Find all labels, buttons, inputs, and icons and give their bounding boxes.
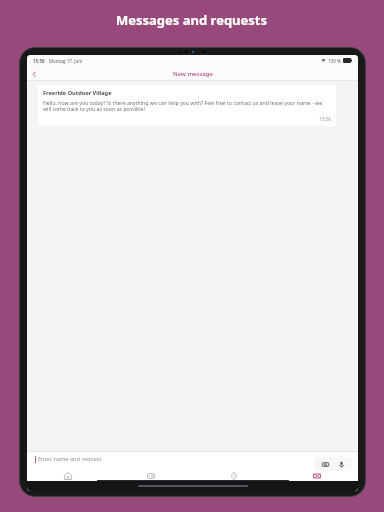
staticText: 15:56 xyxy=(33,58,45,64)
button[interactable]: Keyboard xyxy=(319,458,331,470)
button[interactable]: Home xyxy=(27,470,109,489)
staticText: Travel guide xyxy=(223,482,245,487)
staticText: Freeride Outdoor Village xyxy=(43,89,112,97)
staticText: 100 % xyxy=(328,58,341,64)
button[interactable]: Travel guide xyxy=(192,470,275,489)
button[interactable]: Send xyxy=(339,454,350,465)
button[interactable]: Enter name and request xyxy=(38,455,339,463)
staticText: Messages and requests xyxy=(116,11,268,29)
staticText: Hello, how are you today? Is there anyth… xyxy=(43,99,331,113)
button[interactable]: Microphone xyxy=(335,458,347,470)
staticText: Highlights xyxy=(141,482,160,487)
staticText: 15:56 xyxy=(43,116,331,122)
button[interactable]: Highlights xyxy=(109,470,192,489)
button[interactable]: Back xyxy=(27,67,41,81)
button[interactable]: Freeride Outdoor Village xyxy=(38,85,336,126)
staticText: Montag 17. Juni xyxy=(49,58,83,64)
button[interactable]: Messages xyxy=(275,470,358,489)
staticText: New message xyxy=(173,70,213,78)
